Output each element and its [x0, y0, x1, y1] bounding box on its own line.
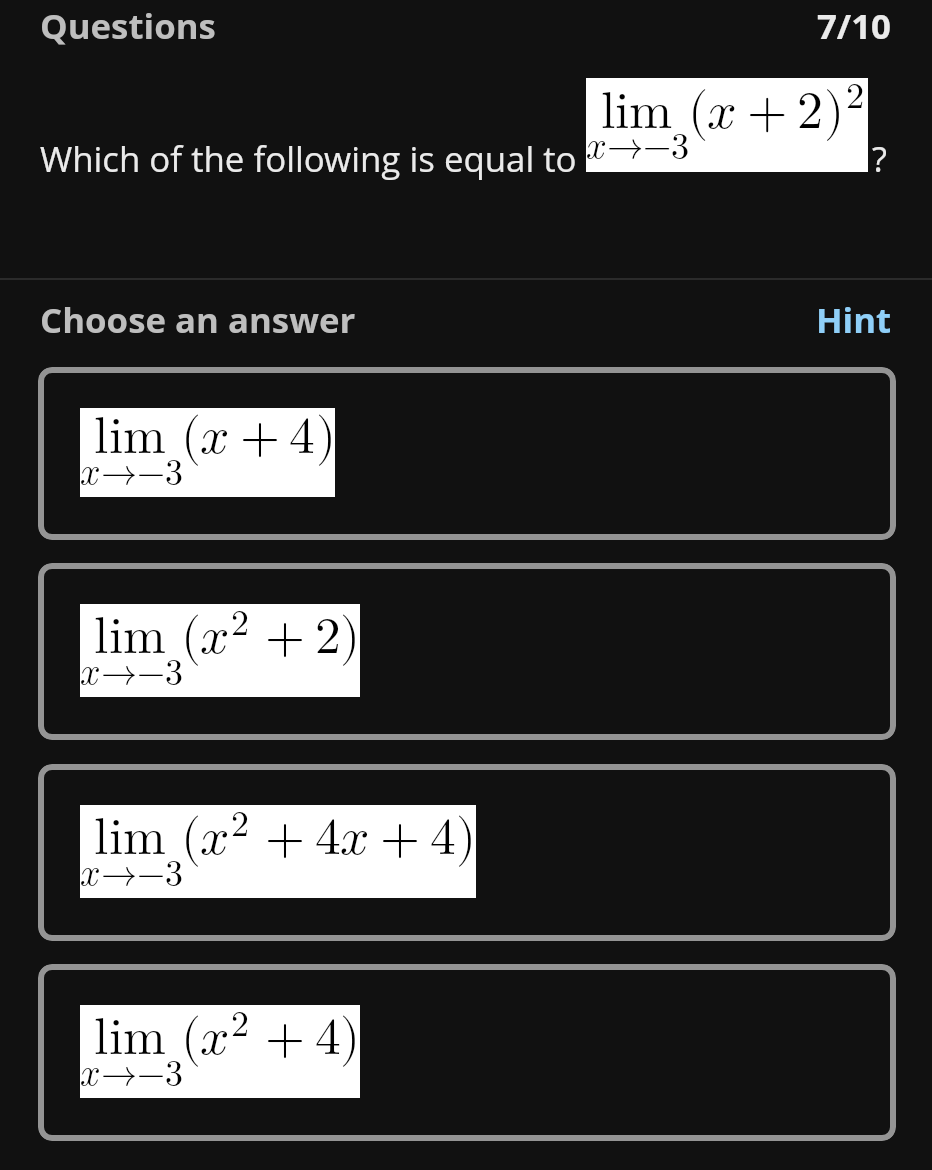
staticText: 3: [671, 129, 690, 165]
staticText: m: [123, 612, 166, 663]
staticText: m: [629, 86, 673, 138]
staticText: −: [643, 129, 672, 165]
staticText: →: [101, 1056, 137, 1092]
staticText: 𝑥: [80, 455, 101, 491]
staticText: 4: [315, 813, 341, 864]
staticText: 𝑥: [707, 86, 737, 138]
staticText: 3: [165, 1056, 183, 1092]
staticText: l: [94, 412, 109, 463]
button[interactable]: l: [38, 964, 896, 1141]
staticText: i: [109, 1013, 124, 1064]
staticText: (: [181, 612, 201, 663]
staticText: 𝑥: [200, 412, 230, 463]
button[interactable]: Hint: [803, 287, 903, 351]
staticText: m: [123, 1013, 166, 1064]
staticText: +: [747, 86, 788, 138]
staticText: +: [265, 1013, 305, 1064]
staticText: l: [94, 813, 109, 864]
staticText: 𝑥: [80, 856, 101, 892]
staticText: →: [101, 856, 137, 892]
staticText: l: [601, 86, 616, 138]
staticText: 2: [231, 606, 249, 642]
staticText: −: [137, 856, 165, 892]
staticText: +: [265, 813, 305, 864]
staticText: +: [240, 412, 280, 463]
staticText: 𝑥: [80, 655, 101, 691]
staticText: ): [824, 86, 845, 138]
staticText: −: [137, 1056, 165, 1092]
staticText: m: [123, 412, 166, 463]
staticText: i: [109, 612, 124, 663]
staticText: 2: [846, 79, 865, 115]
staticText: i: [109, 412, 124, 463]
staticText: Which of the following is equal to: [40, 135, 577, 182]
staticText: 2: [231, 807, 249, 843]
staticText: 2: [231, 1007, 249, 1043]
staticText: Questions: [40, 2, 216, 49]
staticText: →: [607, 129, 644, 165]
staticText: l: [94, 612, 109, 663]
staticText: 𝑥: [340, 813, 370, 864]
staticText: 4: [315, 1013, 341, 1064]
staticText: Hint: [816, 296, 892, 343]
staticText: ): [340, 612, 360, 663]
staticText: 3: [165, 455, 183, 491]
staticText: +: [265, 612, 305, 663]
staticText: 4: [289, 412, 315, 463]
staticText: (: [181, 1013, 201, 1064]
staticText: −: [137, 455, 165, 491]
staticText: 7/10: [817, 2, 891, 49]
staticText: ?: [872, 135, 887, 182]
staticText: 𝑥: [586, 129, 607, 165]
staticText: →: [101, 455, 137, 491]
staticText: ): [456, 813, 476, 864]
staticText: +: [380, 813, 420, 864]
staticText: →: [101, 655, 137, 691]
staticText: 3: [165, 655, 183, 691]
staticText: 𝑥: [200, 813, 230, 864]
staticText: 2: [797, 86, 823, 138]
staticText: 𝑥: [200, 1013, 230, 1064]
button[interactable]: l: [38, 764, 896, 941]
button[interactable]: l: [38, 367, 896, 540]
staticText: l: [94, 1013, 109, 1064]
staticText: (: [688, 86, 709, 138]
button[interactable]: l: [38, 563, 896, 740]
staticText: 2: [315, 612, 341, 663]
staticText: 3: [165, 856, 183, 892]
staticText: Choose an answer: [40, 296, 356, 343]
staticText: ): [340, 1013, 360, 1064]
staticText: (: [181, 813, 201, 864]
staticText: 𝑥: [200, 612, 230, 663]
staticText: 𝑥: [80, 1056, 101, 1092]
staticText: (: [181, 412, 201, 463]
staticText: −: [137, 655, 165, 691]
staticText: m: [123, 813, 166, 864]
staticText: i: [615, 86, 630, 138]
staticText: 4: [430, 813, 456, 864]
staticText: ): [316, 412, 336, 463]
staticText: i: [109, 813, 124, 864]
